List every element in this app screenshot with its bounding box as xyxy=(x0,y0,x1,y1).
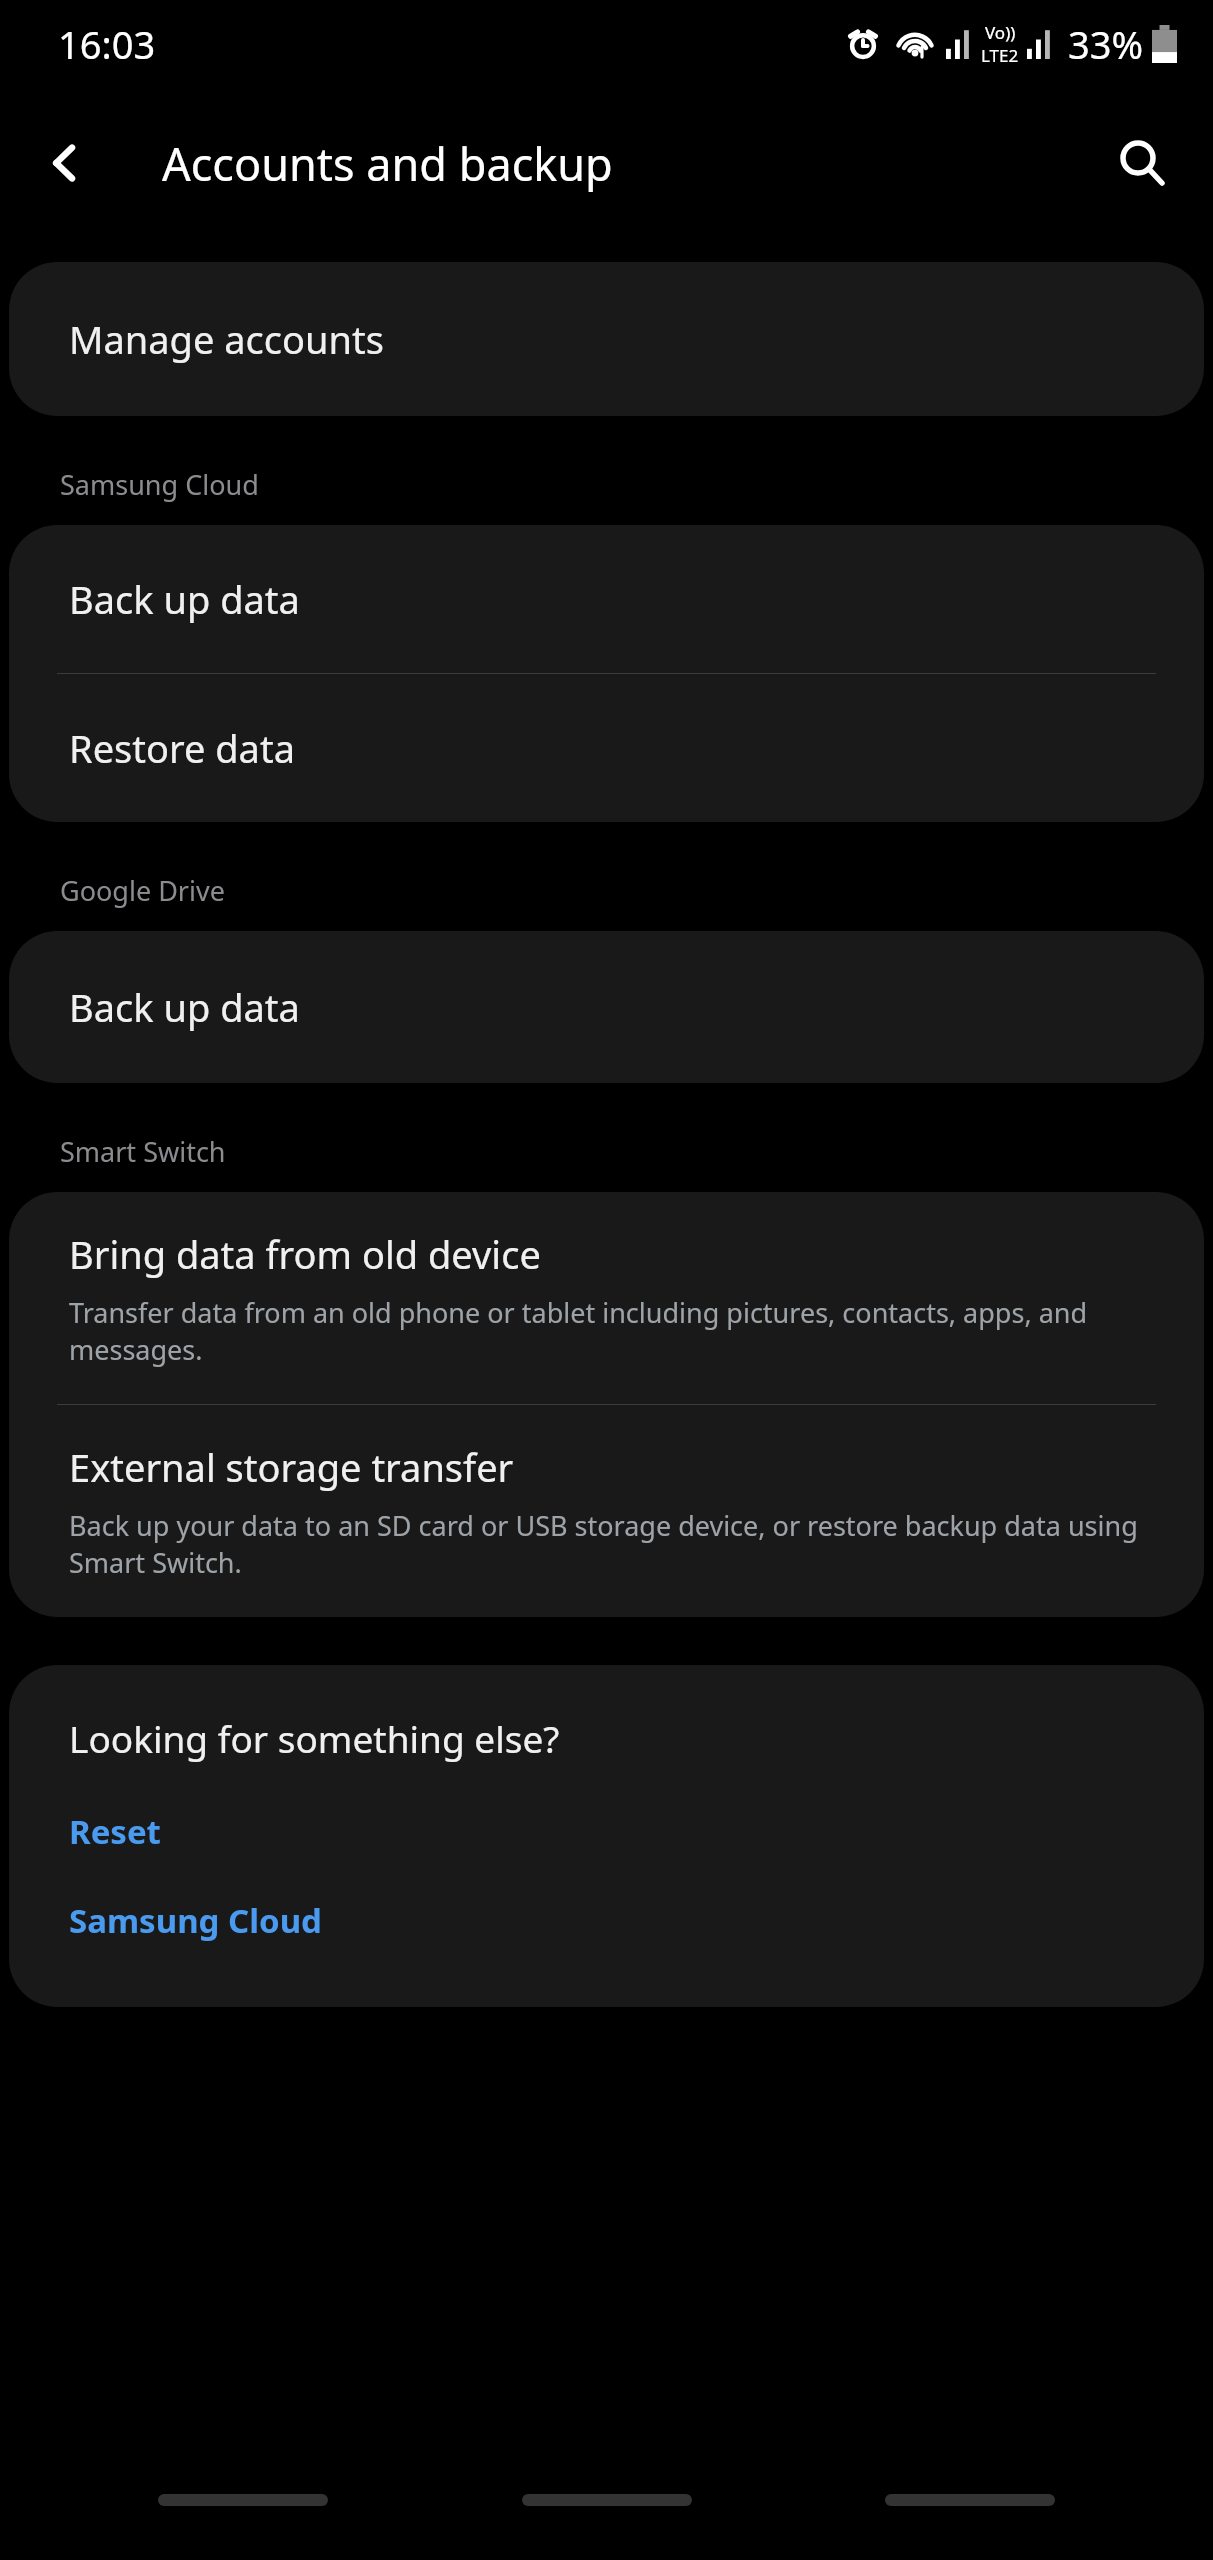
button[interactable]: Back up data xyxy=(9,525,1204,673)
staticText: 16:03 xyxy=(58,18,156,70)
staticText: Smart Switch xyxy=(60,1133,226,1170)
staticText: 33% xyxy=(1068,18,1144,70)
button[interactable]: Bring data from old device xyxy=(9,1192,1204,1404)
button[interactable]: Back up data xyxy=(9,931,1204,1083)
staticText: Vo)) xyxy=(985,21,1016,44)
staticText: Manage accounts xyxy=(69,313,384,365)
staticText: Bring data from old device xyxy=(69,1228,541,1280)
button[interactable]: Search xyxy=(1099,120,1185,206)
staticText: Back up data xyxy=(69,981,300,1033)
button[interactable]: Samsung Cloud xyxy=(9,1888,1204,1953)
button[interactable]: External storage transfer xyxy=(9,1405,1204,1617)
button[interactable]: Recents xyxy=(123,2476,363,2524)
staticText: Google Drive xyxy=(60,872,225,909)
button[interactable]: Home xyxy=(487,2476,727,2524)
button[interactable]: Back xyxy=(26,124,104,202)
staticText: Transfer data from an old phone or table… xyxy=(69,1294,1156,1368)
button[interactable]: Restore data xyxy=(9,674,1204,822)
staticText: Back up your data to an SD card or USB s… xyxy=(69,1507,1156,1581)
staticText: LTE2 xyxy=(981,44,1019,67)
staticText: Reset xyxy=(69,1809,161,1854)
button[interactable]: Reset xyxy=(9,1799,1204,1864)
staticText: Restore data xyxy=(69,722,295,774)
staticText: External storage transfer xyxy=(69,1441,514,1493)
staticText: Looking for something else? xyxy=(69,1713,560,1763)
button[interactable]: Back xyxy=(850,2476,1090,2524)
button[interactable]: Manage accounts xyxy=(9,262,1204,416)
staticText: Back up data xyxy=(69,573,300,625)
staticText: Samsung Cloud xyxy=(69,1898,322,1943)
staticText: Samsung Cloud xyxy=(60,466,259,503)
staticText: Accounts and backup xyxy=(162,133,613,194)
